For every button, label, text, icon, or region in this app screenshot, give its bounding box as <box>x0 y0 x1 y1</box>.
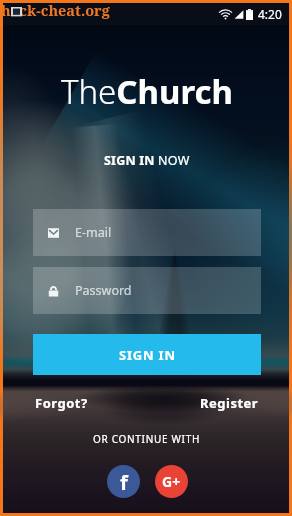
staticText: G+ <box>162 472 181 491</box>
button[interactable]: Sign in with Facebook <box>107 465 140 498</box>
staticText: Forgot? <box>35 394 88 412</box>
button[interactable]: Password <box>33 267 261 314</box>
staticText: hack-cheat.org <box>1 0 110 20</box>
button[interactable]: SIGN IN <box>33 334 261 375</box>
button[interactable]: Forgot? <box>33 391 90 415</box>
staticText: Register <box>200 394 259 412</box>
staticText: 4:20 <box>258 6 282 22</box>
staticText: E-mail <box>75 224 112 241</box>
staticText: f <box>120 469 128 496</box>
staticText: SIGN IN <box>119 346 176 364</box>
button[interactable]: E-mail <box>33 209 261 256</box>
button[interactable]: Register <box>198 391 261 415</box>
staticText: TheChurch <box>61 69 233 114</box>
staticText: SIGN IN NOW <box>104 152 190 169</box>
staticText: OR CONTINUE WITH <box>93 432 201 446</box>
button[interactable]: Sign in with Google <box>155 465 188 498</box>
staticText: Password <box>75 282 132 299</box>
